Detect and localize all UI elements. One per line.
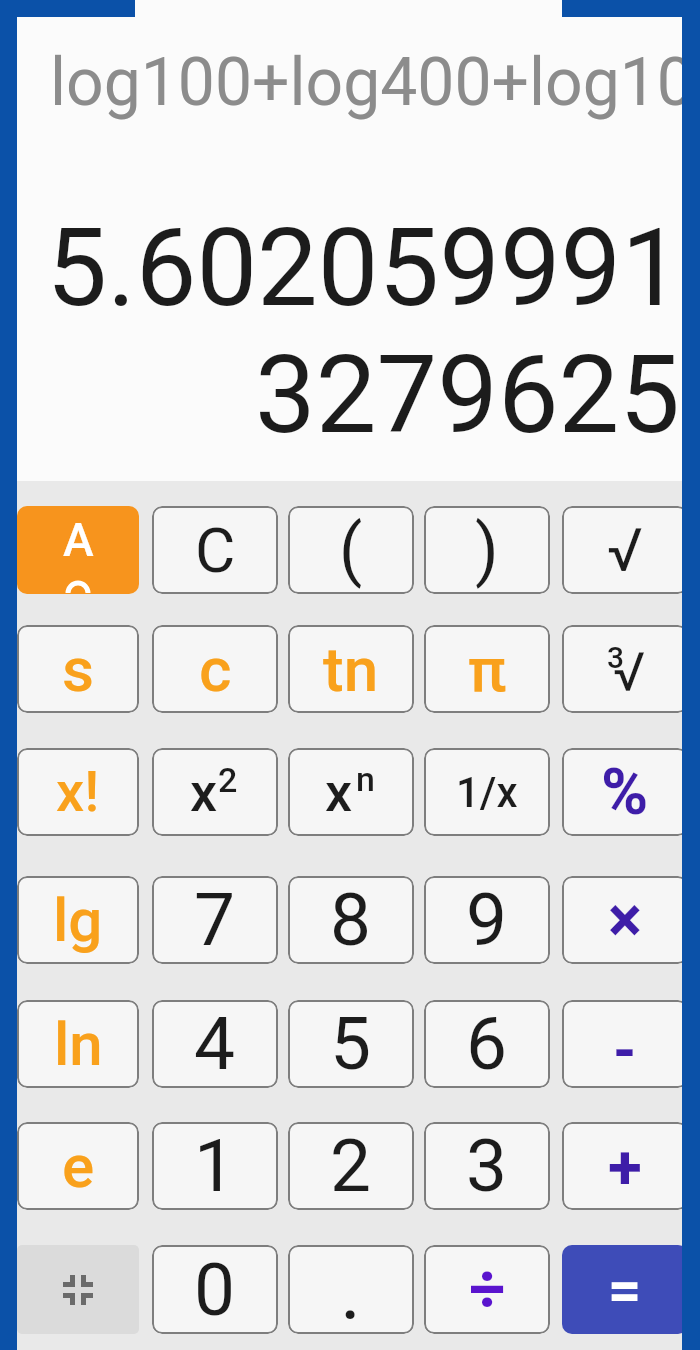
button[interactable]: x xyxy=(152,748,278,836)
button[interactable]: - xyxy=(562,1000,688,1088)
staticText: x xyxy=(325,761,353,824)
staticText: n xyxy=(356,759,375,799)
button[interactable] xyxy=(17,1245,139,1334)
button[interactable]: 0 xyxy=(152,1245,278,1334)
button[interactable]: tn xyxy=(288,625,414,713)
button[interactable]: 4 xyxy=(152,1000,278,1088)
staticText: 8 xyxy=(330,877,372,963)
staticText: √ xyxy=(607,515,643,585)
button[interactable]: 9 xyxy=(424,876,550,964)
button[interactable]: % xyxy=(562,748,688,836)
staticText: 4 xyxy=(194,1001,236,1087)
staticText: 2 xyxy=(218,760,238,800)
staticText: x! xyxy=(56,759,100,825)
button[interactable]: 1 xyxy=(152,1122,278,1210)
staticText: e xyxy=(62,1131,95,1201)
staticText: C xyxy=(195,514,236,587)
staticText: 1/x xyxy=(456,768,518,817)
button[interactable]: e xyxy=(17,1122,139,1210)
staticText: 3 xyxy=(466,1123,508,1209)
staticText: 2 xyxy=(330,1123,372,1209)
button[interactable]: c xyxy=(152,625,278,713)
staticText: s xyxy=(62,633,95,706)
button[interactable]: ln xyxy=(17,1000,139,1088)
button[interactable]: √ xyxy=(562,506,688,594)
button[interactable]: × xyxy=(562,876,688,964)
button[interactable]: s xyxy=(17,625,139,713)
staticText: ln xyxy=(54,1009,103,1079)
button[interactable]: 5 xyxy=(288,1000,414,1088)
staticText: - xyxy=(613,1015,637,1085)
button[interactable]: 8 xyxy=(288,876,414,964)
button[interactable]: C xyxy=(152,506,278,594)
staticText: 3 xyxy=(607,640,625,675)
button[interactable]: + xyxy=(562,1122,688,1210)
staticText: + xyxy=(608,1130,642,1203)
staticText: tn xyxy=(323,633,379,706)
staticText: 3279625 xyxy=(0,332,680,459)
button[interactable]: 2 xyxy=(288,1122,414,1210)
staticText: 1 xyxy=(194,1123,236,1209)
staticText: x xyxy=(190,761,218,824)
button[interactable]: lg xyxy=(17,876,139,964)
staticText: % xyxy=(601,755,649,830)
staticText: log100+log400+log10 xyxy=(50,44,694,121)
staticText: 9 xyxy=(466,877,508,963)
button[interactable]: 7 xyxy=(152,876,278,964)
button[interactable]: = xyxy=(562,1245,688,1334)
button[interactable]: ( xyxy=(288,506,414,594)
button[interactable]: ÷ xyxy=(424,1245,550,1334)
button[interactable]: x! xyxy=(17,748,139,836)
staticText: 5 xyxy=(330,1001,372,1087)
staticText: c xyxy=(199,633,232,706)
staticText: × xyxy=(608,883,642,958)
staticText: 7 xyxy=(194,877,236,963)
button[interactable]: ) xyxy=(424,506,550,594)
staticText: √ xyxy=(613,641,646,704)
staticText: lg xyxy=(53,885,103,955)
staticText: = xyxy=(608,1256,642,1324)
button[interactable]: . xyxy=(288,1245,414,1334)
button[interactable]: 1/x xyxy=(424,748,550,836)
button[interactable]: 6 xyxy=(424,1000,550,1088)
staticText: . xyxy=(340,1245,362,1334)
staticText: A xyxy=(63,513,94,567)
button[interactable]: 3 xyxy=(424,1122,550,1210)
button[interactable]: π xyxy=(424,625,550,713)
staticText: 5.602059991 xyxy=(0,205,682,332)
staticText: ÷ xyxy=(469,1252,506,1327)
staticText: ( xyxy=(339,510,363,590)
button[interactable]: √ xyxy=(562,625,688,713)
staticText: ) xyxy=(475,510,499,590)
staticText: π xyxy=(468,633,507,706)
button[interactable]: A xyxy=(17,506,139,594)
button[interactable]: x xyxy=(288,748,414,836)
staticText: 0 xyxy=(194,1247,236,1333)
staticText: 6 xyxy=(466,1001,508,1087)
